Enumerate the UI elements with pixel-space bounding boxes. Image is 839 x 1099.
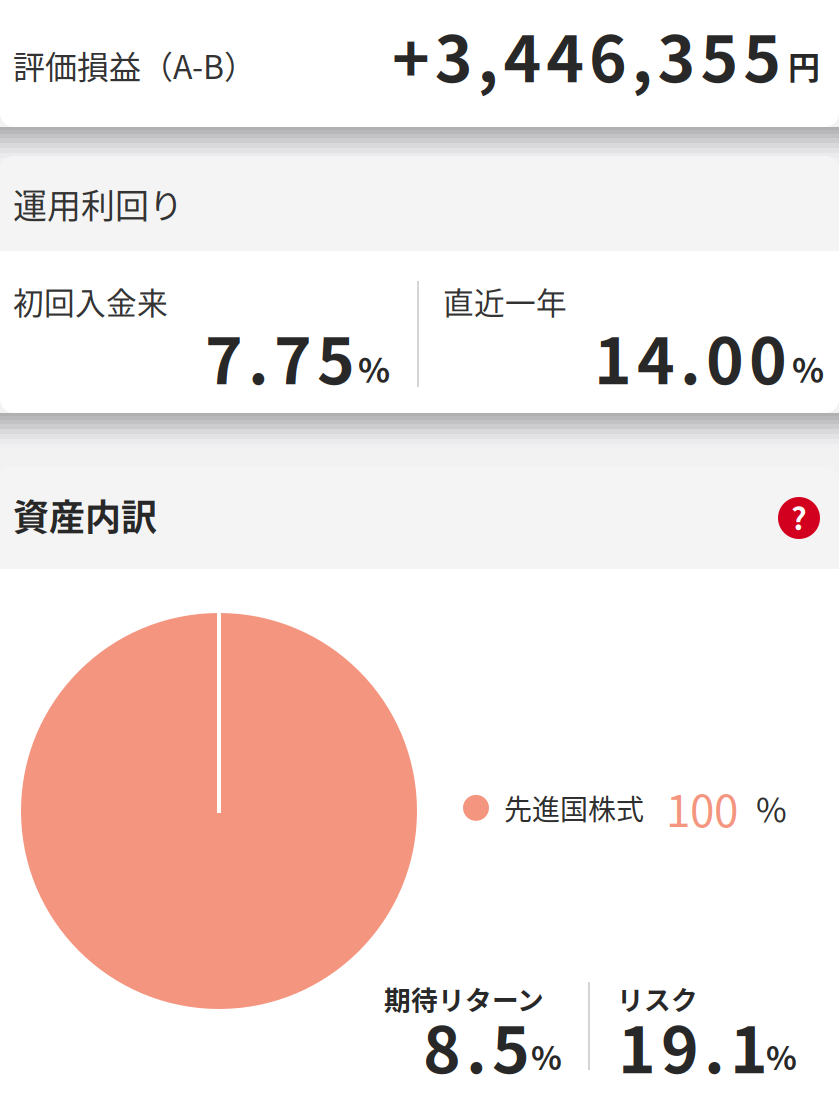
staticText: 14.00 <box>594 310 787 403</box>
staticText: リスク <box>617 979 698 1018</box>
staticText: % <box>531 1033 562 1079</box>
staticText: 7.75 <box>205 310 355 403</box>
staticText: % <box>766 1033 797 1079</box>
staticText: 期待リターン <box>384 979 544 1018</box>
staticText: +3,446,355 <box>392 8 781 101</box>
staticText: % <box>792 344 824 392</box>
button[interactable]: 資産内訳のヘルプ <box>768 487 830 549</box>
staticText: 100 <box>666 776 738 840</box>
staticText: 運用利回り <box>13 179 183 228</box>
staticText: 直近一年 <box>443 279 567 323</box>
staticText: 初回入金来 <box>13 279 168 323</box>
staticText: 評価損益（A-B） <box>13 42 256 88</box>
staticText: 資産内訳 <box>13 489 157 541</box>
staticText: % <box>756 784 787 832</box>
staticText: % <box>358 344 390 392</box>
staticText: ? <box>791 495 807 539</box>
staticText: 先進国株式 <box>504 788 644 828</box>
staticText: 8.5 <box>423 999 530 1092</box>
staticText: 19.1 <box>618 999 768 1092</box>
staticText: 円 <box>788 42 820 88</box>
